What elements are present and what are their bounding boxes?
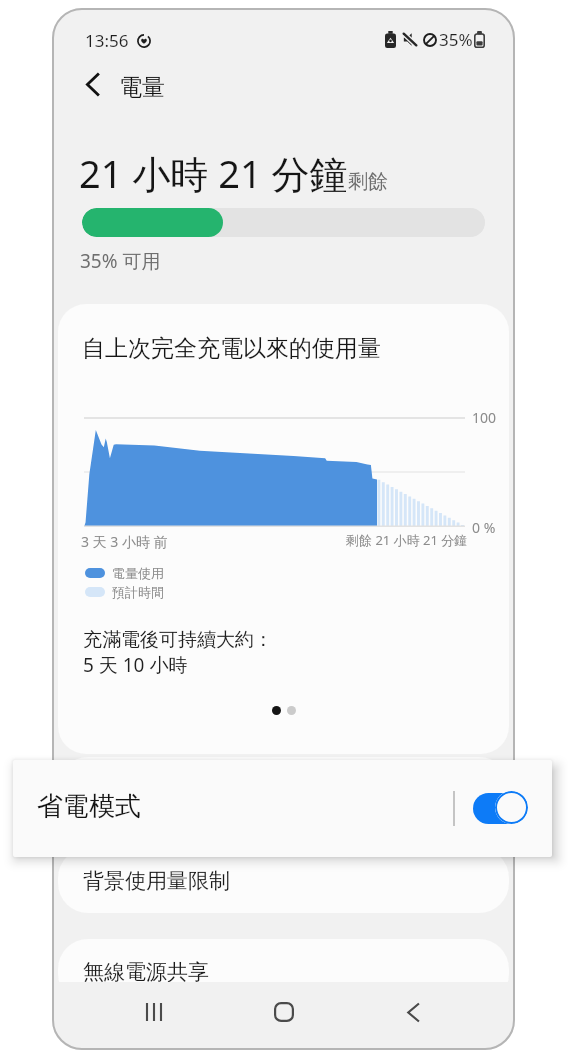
staticText: 自上次完全充電以來的使用量	[82, 334, 381, 363]
button[interactable]: Home	[257, 985, 311, 1039]
staticText: 省電模式	[83, 777, 167, 803]
button[interactable]: Recent apps	[127, 985, 181, 1039]
staticText: 35% 可用	[80, 248, 161, 274]
staticText: 電量	[119, 73, 165, 102]
button[interactable]: 省電模式	[13, 760, 552, 857]
staticText: 35%	[439, 28, 473, 51]
button[interactable]: 無線電源共享	[58, 939, 509, 1004]
staticText: 電量使用	[112, 565, 164, 581]
staticText: 無線電源共享	[83, 959, 209, 985]
staticText: 預計時間	[112, 584, 164, 600]
staticText: 背景使用量限制	[83, 868, 230, 894]
button[interactable]: 背景使用量限制	[58, 848, 509, 913]
staticText: 13:56	[85, 29, 129, 52]
staticText: 5 天 10 小時	[83, 652, 188, 678]
staticText: 21 小時 21 分鐘	[79, 147, 348, 199]
button[interactable]: Power saving mode toggle	[473, 791, 528, 824]
staticText: 剩餘 21 小時 21 分鐘	[346, 531, 468, 549]
staticText: 充滿電後可持續大約：	[83, 628, 273, 652]
button[interactable]: Back	[386, 985, 440, 1039]
staticText: 剩餘	[348, 169, 388, 194]
staticText: 100	[472, 408, 497, 427]
staticText: 0 %	[472, 518, 496, 537]
button[interactable]: 省電模式	[58, 757, 509, 822]
button[interactable]: Back	[68, 59, 118, 109]
staticText: 省電模式	[37, 790, 141, 823]
staticText: 3 天 3 小時 前	[81, 532, 168, 551]
